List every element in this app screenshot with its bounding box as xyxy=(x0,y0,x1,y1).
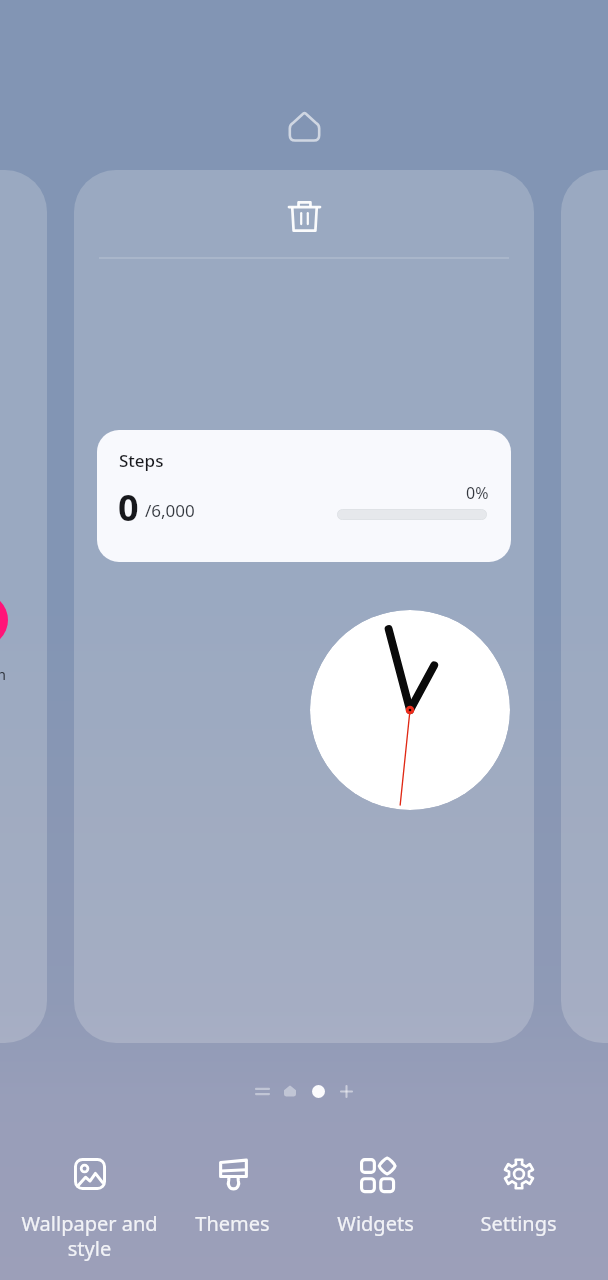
button[interactable]: Settings xyxy=(447,1152,590,1237)
staticText: Widgets xyxy=(337,1210,414,1237)
button[interactable]: Widgets xyxy=(304,1152,447,1237)
staticText: Wallpaper and style xyxy=(21,1210,158,1262)
button[interactable]: Themes xyxy=(161,1152,304,1237)
button[interactable]: Remove page xyxy=(280,192,328,240)
staticText: Themes xyxy=(195,1210,270,1237)
button[interactable]: Current page xyxy=(304,1077,332,1105)
staticText: Settings xyxy=(480,1210,557,1237)
staticText: m xyxy=(0,664,7,684)
button[interactable]: Analog clock xyxy=(310,610,510,810)
button[interactable]: Add page xyxy=(332,1077,360,1105)
button[interactable]: Home page xyxy=(276,1077,304,1105)
staticText: 0% xyxy=(466,482,489,504)
staticText: 0 xyxy=(118,483,139,532)
button[interactable]: Home screen xyxy=(280,103,328,151)
staticText: /6,000 xyxy=(145,499,195,522)
button[interactable]: Wallpaper and style xyxy=(18,1152,161,1262)
button[interactable]: App list page xyxy=(248,1077,276,1105)
staticText: Steps xyxy=(119,449,164,472)
button[interactable]: Steps xyxy=(97,430,511,562)
